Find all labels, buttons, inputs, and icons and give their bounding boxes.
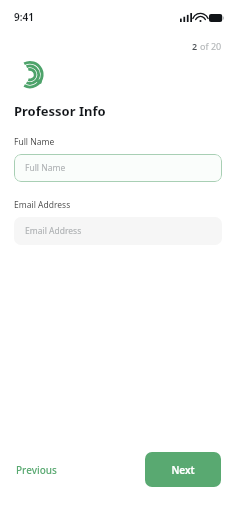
staticText: Previous bbox=[16, 463, 57, 477]
staticText: 9:41 bbox=[14, 10, 34, 24]
staticText: Professor Info bbox=[14, 102, 106, 120]
button[interactable]: Next bbox=[145, 452, 221, 487]
staticText: of 20 bbox=[200, 40, 222, 52]
staticText: Full Name bbox=[25, 162, 66, 174]
staticText: Next bbox=[171, 463, 195, 477]
staticText: Email Address bbox=[25, 225, 82, 237]
staticText: Full Name bbox=[14, 136, 55, 148]
button[interactable]: Full Name bbox=[14, 154, 222, 182]
button[interactable]: Email Address bbox=[14, 217, 222, 245]
staticText: 2 bbox=[192, 40, 198, 52]
staticText: Email Address bbox=[14, 199, 71, 211]
button[interactable]: Previous bbox=[14, 457, 59, 483]
